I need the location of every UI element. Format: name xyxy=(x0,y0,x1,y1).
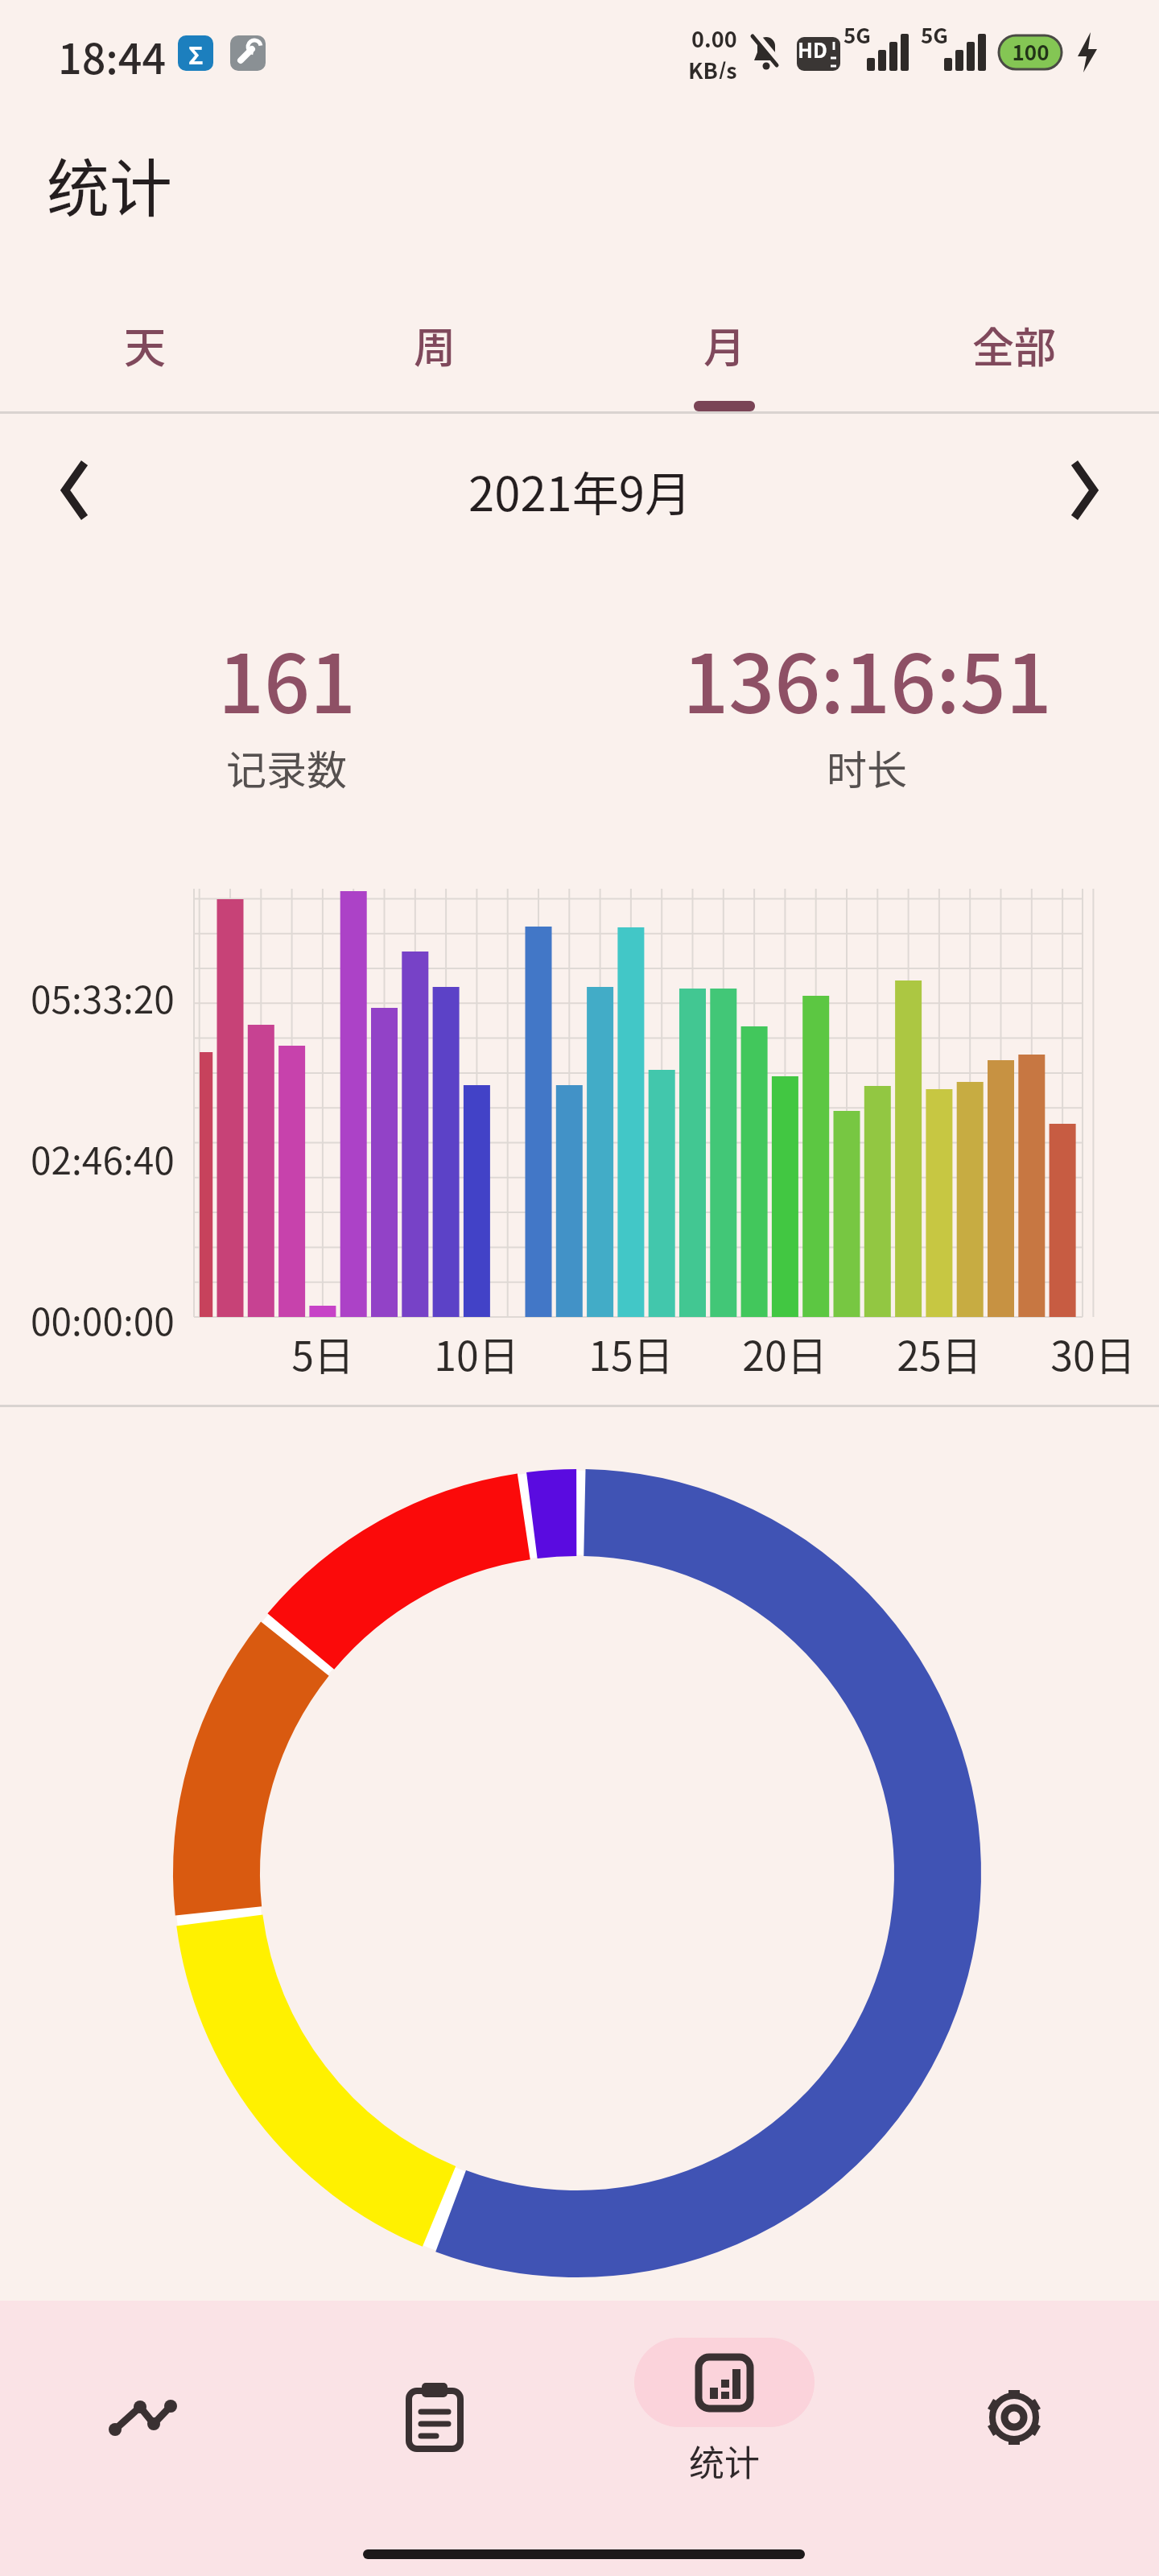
staticText: 周 xyxy=(414,315,456,375)
staticText: 统计 xyxy=(689,2435,760,2487)
staticText: 25日 xyxy=(897,1324,982,1377)
staticText: HD xyxy=(798,35,827,64)
staticText: 全部 xyxy=(972,315,1057,375)
button[interactable] xyxy=(1040,446,1128,535)
staticText: 100 xyxy=(1012,36,1050,67)
staticText: KB/s xyxy=(688,54,737,79)
button[interactable]: 全部 xyxy=(869,292,1159,397)
staticText: 时长 xyxy=(827,738,907,795)
button[interactable] xyxy=(869,2301,1159,2534)
button[interactable]: 统计 xyxy=(579,2301,869,2534)
staticText: 20日 xyxy=(742,1324,827,1377)
button[interactable]: 月 xyxy=(579,292,869,397)
staticText: 5日 xyxy=(291,1324,354,1377)
button[interactable]: 天 xyxy=(0,292,290,397)
staticText: 00:00:00 xyxy=(31,1293,175,1344)
staticText: 5G xyxy=(843,19,871,50)
staticText: 统计 xyxy=(47,139,173,230)
staticText: 0.00 xyxy=(691,23,737,54)
staticText: 2021年9月 xyxy=(468,457,691,525)
staticText: 18:44 xyxy=(58,26,167,86)
staticText: 天 xyxy=(124,315,167,375)
staticText: 161 xyxy=(218,620,356,724)
staticText: 10日 xyxy=(434,1324,519,1377)
staticText: 02:46:40 xyxy=(31,1132,175,1183)
button[interactable] xyxy=(290,2301,579,2534)
staticText: 记录数 xyxy=(226,738,347,795)
staticText: 05:33:20 xyxy=(31,971,175,1022)
button[interactable] xyxy=(31,446,119,535)
staticText: 15日 xyxy=(588,1324,674,1377)
button[interactable]: 周 xyxy=(290,292,579,397)
staticText: Σ xyxy=(188,36,204,71)
staticText: 5G xyxy=(921,19,948,50)
staticText: 30日 xyxy=(1050,1324,1136,1377)
staticText: 月 xyxy=(703,315,746,375)
button[interactable] xyxy=(0,2301,290,2534)
staticText: 136:16:51 xyxy=(683,620,1052,724)
